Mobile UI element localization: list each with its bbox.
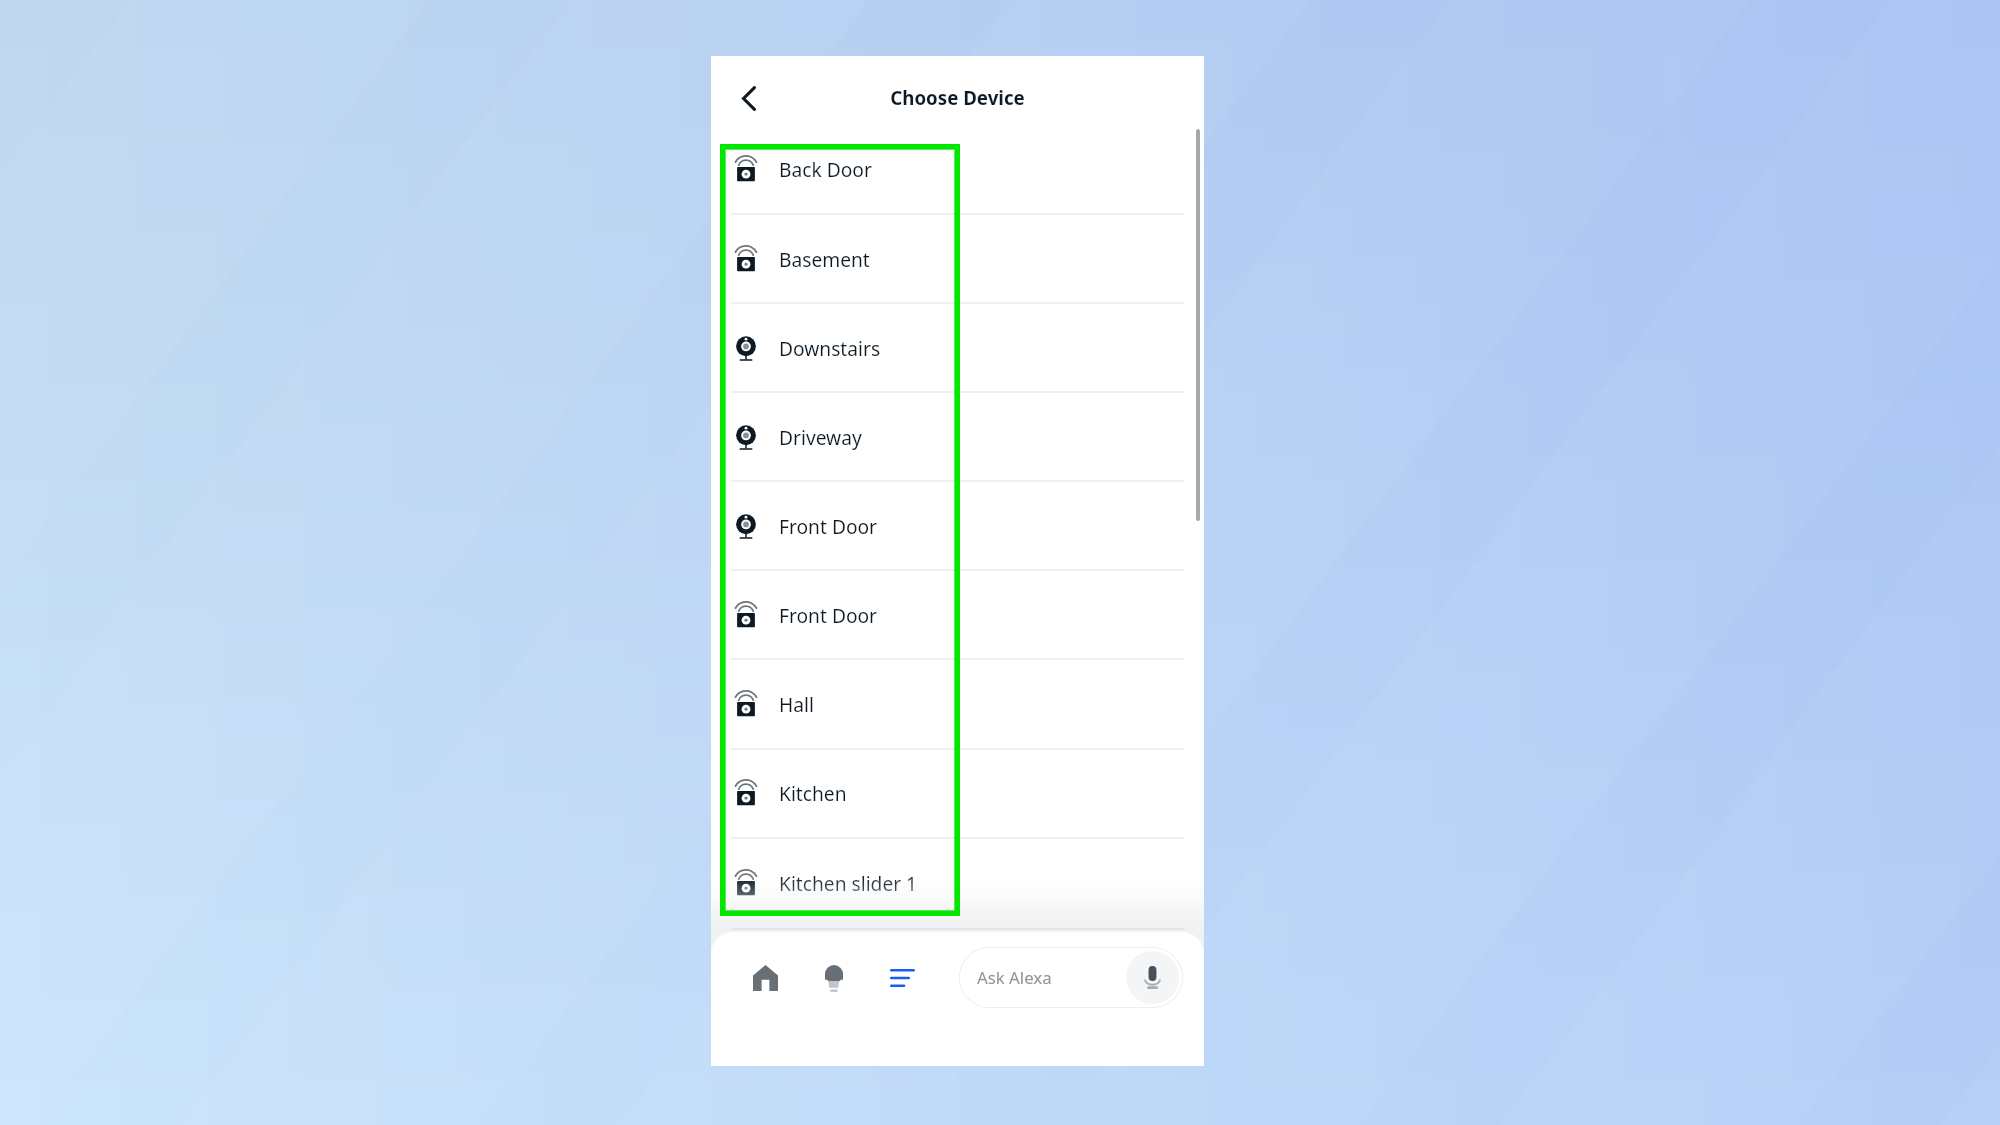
button[interactable]: Kitchen slider 1 xyxy=(711,838,1204,927)
button[interactable]: Voice input xyxy=(1126,951,1179,1004)
button[interactable]: Lists xyxy=(880,956,924,1000)
staticText: Choose Device xyxy=(890,85,1025,110)
button[interactable]: Back Door xyxy=(711,124,1204,213)
button[interactable]: Front Door xyxy=(711,570,1204,659)
button[interactable]: Devices xyxy=(812,956,856,1000)
button[interactable]: Driveway xyxy=(711,392,1204,481)
button[interactable]: Back xyxy=(727,76,771,120)
button[interactable]: Front Door xyxy=(711,481,1204,570)
button[interactable]: Ask Alexa xyxy=(959,947,1183,1008)
staticText: Hall xyxy=(779,691,814,717)
button[interactable]: Home xyxy=(743,956,787,1000)
staticText: Basement xyxy=(779,246,870,272)
staticText: Kitchen slider 1 xyxy=(779,870,918,896)
staticText: Front Door xyxy=(779,602,878,628)
staticText: Ask Alexa xyxy=(977,966,1052,989)
button[interactable]: Downstairs xyxy=(711,303,1204,392)
staticText: Back Door xyxy=(779,156,872,182)
staticText: Front Door xyxy=(779,513,878,539)
staticText: Downstairs xyxy=(779,335,881,361)
staticText: Kitchen xyxy=(779,780,847,806)
button[interactable]: Kitchen xyxy=(711,748,1204,837)
button[interactable]: Hall xyxy=(711,659,1204,748)
button[interactable]: Basement xyxy=(711,214,1204,303)
staticText: Driveway xyxy=(779,424,862,450)
